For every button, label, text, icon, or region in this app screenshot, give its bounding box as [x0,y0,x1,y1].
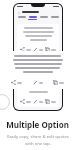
button[interactable]: Copy [45,47,56,52]
button[interactable] [16,16,27,20]
button[interactable] [27,16,38,20]
button[interactable] [49,16,60,20]
button[interactable]: Copy [45,99,56,104]
button[interactable]: Share [11,80,22,85]
button[interactable]: Edit [33,80,43,85]
button[interactable]: Copy [53,80,64,85]
button[interactable]: Share [17,84,59,107]
button[interactable]: Share [20,47,31,52]
button[interactable]: Share [20,99,31,104]
button[interactable]: Edit [33,99,43,104]
button[interactable]: Back [17,11,20,14]
staticText: Multiple Option [6,119,69,130]
button[interactable]: Share [17,24,59,55]
staticText: Easily copy, share & edit quotes with on… [7,134,69,146]
button[interactable] [38,16,49,20]
button[interactable]: Edit [33,47,43,52]
button[interactable]: Share [17,58,59,81]
button[interactable]: Share [7,51,68,89]
